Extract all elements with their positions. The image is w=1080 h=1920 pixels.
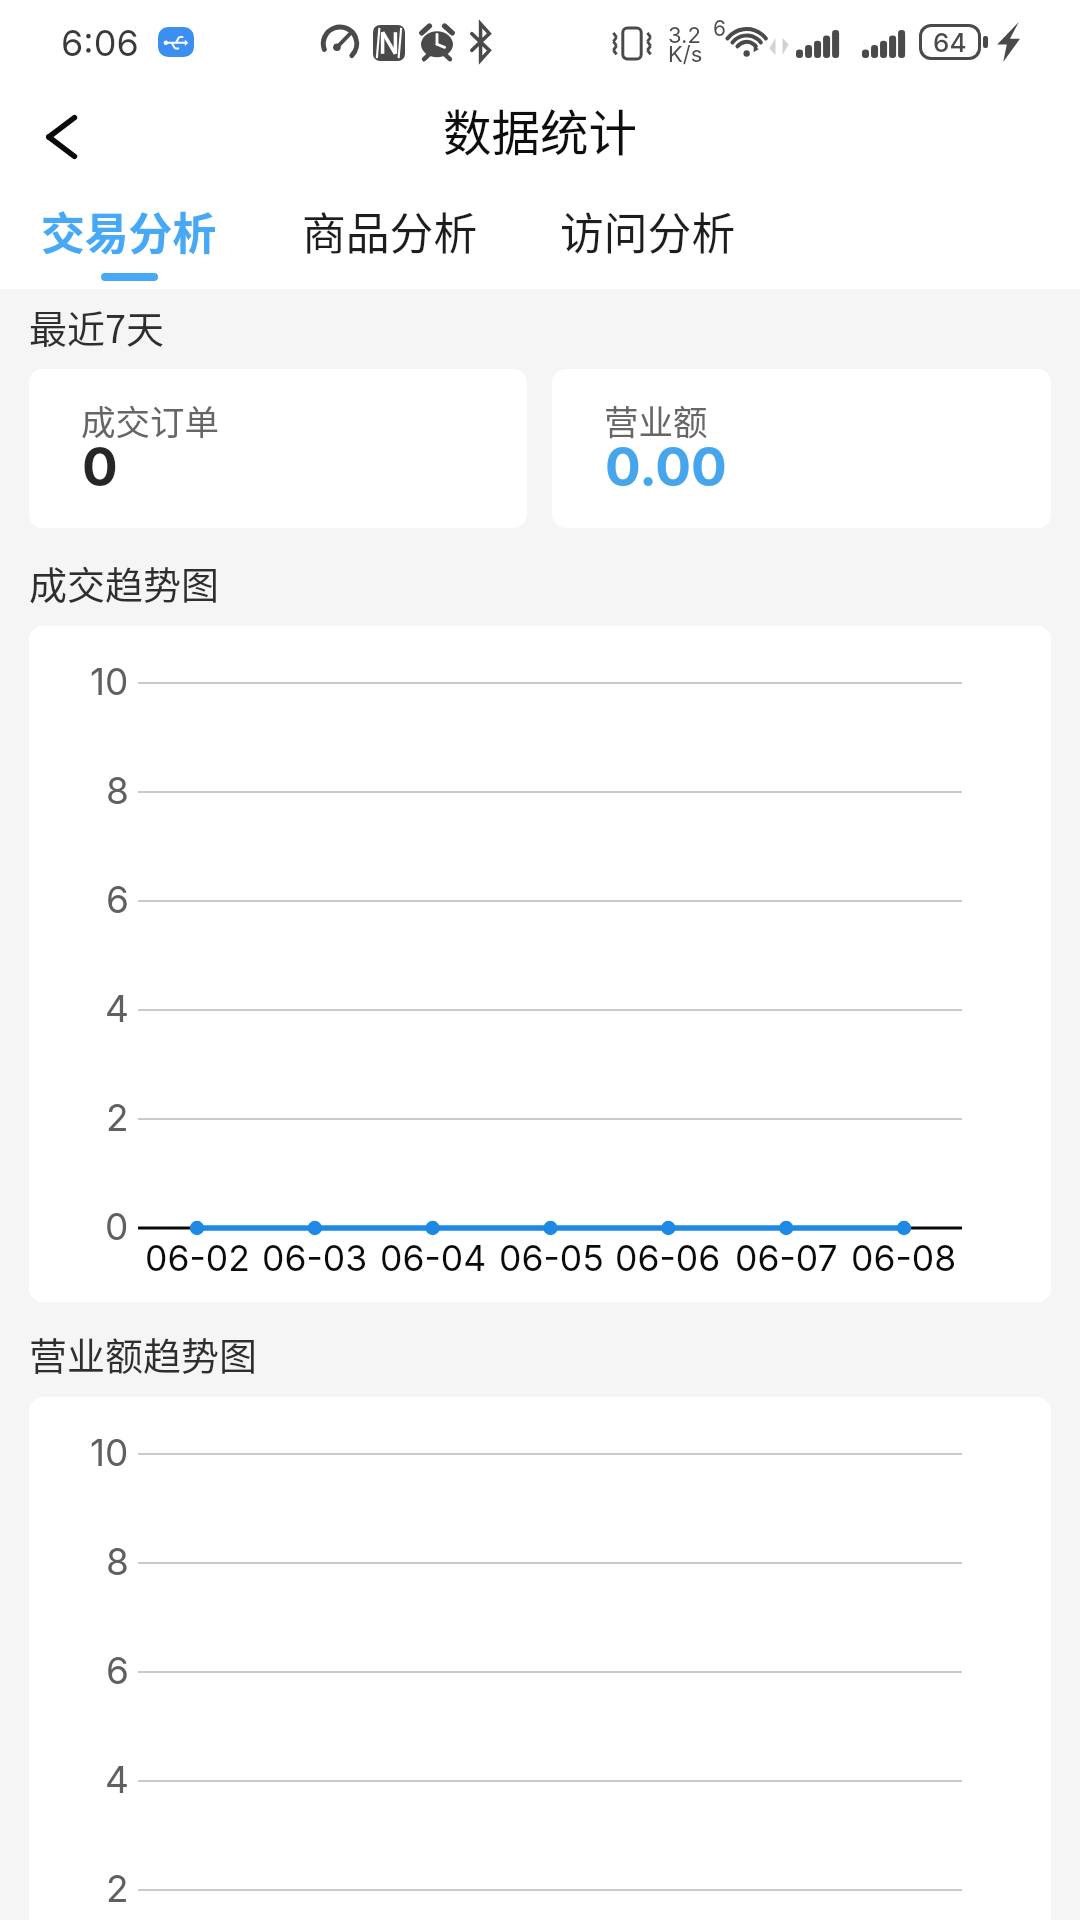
staticText: 营业额 bbox=[604, 395, 708, 445]
staticText: 06-06 bbox=[615, 1237, 721, 1280]
staticText: 4 bbox=[105, 1757, 129, 1802]
staticText: 3.2 bbox=[668, 22, 701, 49]
staticText: 0 bbox=[82, 435, 118, 499]
staticText: 8 bbox=[106, 1539, 129, 1584]
staticText: 0.00 bbox=[605, 435, 727, 499]
staticText: K/s bbox=[668, 41, 703, 68]
staticText: 4 bbox=[105, 986, 129, 1031]
button[interactable]: 商品分析 bbox=[300, 199, 480, 277]
button[interactable]: 营业额 bbox=[552, 369, 1051, 528]
staticText: 商品分析 bbox=[302, 199, 478, 262]
staticText: 2 bbox=[106, 1095, 129, 1140]
staticText: 2 bbox=[106, 1866, 129, 1911]
button[interactable]: 10 bbox=[29, 626, 1051, 1302]
staticText: 8 bbox=[106, 768, 129, 813]
button[interactable]: 交易分析 bbox=[39, 199, 219, 285]
staticText: 06-07 bbox=[735, 1237, 838, 1280]
staticText: 10 bbox=[90, 659, 129, 704]
staticText: 数据统计 bbox=[443, 95, 638, 165]
staticText: 06-03 bbox=[262, 1237, 368, 1280]
staticText: 交易分析 bbox=[41, 199, 217, 262]
staticText: 营业额趋势图 bbox=[29, 1326, 258, 1381]
button[interactable]: Back bbox=[16, 92, 106, 182]
staticText: 06-08 bbox=[851, 1237, 957, 1280]
button[interactable]: 成交订单 bbox=[29, 369, 527, 528]
staticText: 06-04 bbox=[380, 1237, 487, 1280]
staticText: 06-05 bbox=[499, 1237, 604, 1280]
staticText: 64 bbox=[933, 27, 967, 57]
staticText: 6 bbox=[106, 1648, 129, 1693]
staticText: 最近7天 bbox=[29, 299, 165, 354]
staticText: 访问分析 bbox=[560, 199, 736, 262]
button[interactable]: 10 bbox=[29, 1397, 1051, 1920]
staticText: 6 bbox=[713, 16, 727, 41]
staticText: 成交订单 bbox=[81, 395, 219, 445]
staticText: 成交趋势图 bbox=[29, 555, 220, 610]
button[interactable]: 访问分析 bbox=[558, 199, 738, 277]
staticText: 6:06 bbox=[61, 21, 139, 65]
staticText: 0 bbox=[105, 1204, 129, 1249]
staticText: 10 bbox=[90, 1430, 129, 1475]
staticText: 06-02 bbox=[145, 1237, 250, 1280]
staticText: 6 bbox=[106, 877, 129, 922]
